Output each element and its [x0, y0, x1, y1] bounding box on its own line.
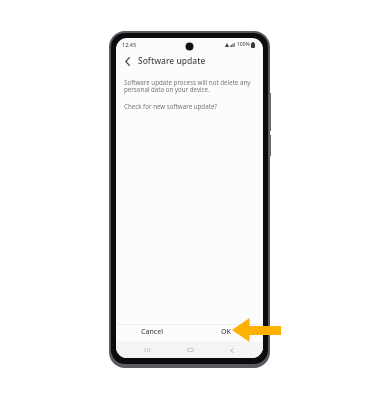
staticText: Software update process will not delete …	[124, 78, 251, 94]
staticText: OK	[221, 327, 231, 337]
button[interactable]: Cancel	[116, 325, 189, 342]
staticText: Check for new software update?	[124, 102, 218, 110]
button[interactable]: Recent apps	[126, 342, 169, 358]
staticText: Cancel	[141, 327, 164, 337]
button[interactable]: Back	[211, 342, 253, 358]
staticText: 100%	[237, 41, 250, 48]
button[interactable]: Home	[169, 342, 211, 358]
button[interactable]: Back	[120, 54, 134, 68]
staticText: Software update	[138, 55, 206, 67]
button[interactable]: OK	[189, 325, 263, 342]
staticText: 12:45	[122, 41, 137, 48]
